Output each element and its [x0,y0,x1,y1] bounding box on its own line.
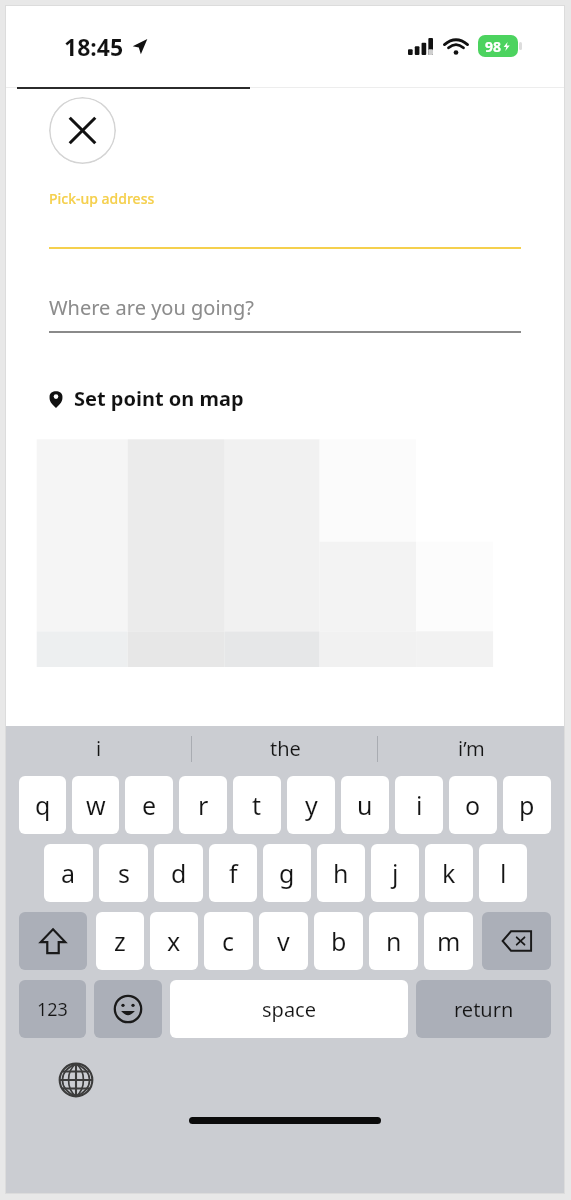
staticText: 18:45 [64,31,124,62]
staticText: h [333,856,349,890]
staticText: i’m [458,735,485,762]
staticText: m [437,924,461,958]
button[interactable]: i [6,726,192,771]
button[interactable]: f [209,844,257,902]
button[interactable]: z [96,912,144,970]
button[interactable]: r [179,776,227,834]
staticText: x [167,924,181,958]
button[interactable]: e [125,776,173,834]
button[interactable]: w [72,776,119,834]
staticText: t [252,788,262,822]
button[interactable]: t [233,776,281,834]
button[interactable]: d [154,844,203,902]
button[interactable]: Where are you going? [49,294,521,333]
staticText: 123 [37,997,68,1022]
button[interactable]: j [371,844,419,902]
button[interactable]: q [19,776,66,834]
button[interactable]: Set point on map [49,385,244,412]
staticText: k [442,856,456,890]
staticText: l [500,856,507,890]
button[interactable]: i [395,776,443,834]
staticText: c [222,924,235,958]
button[interactable]: m [424,912,473,970]
staticText: Where are you going? [49,294,254,321]
staticText: i [96,735,102,762]
staticText: w [86,788,106,822]
button[interactable]: Backspace [482,912,551,970]
staticText: y [305,788,318,822]
staticText: return [454,996,514,1023]
staticText: v [277,924,290,958]
staticText: o [465,788,481,822]
button[interactable]: h [317,844,365,902]
staticText: Pick-up address [49,189,155,208]
button[interactable]: p [503,776,551,834]
button[interactable]: k [425,844,473,902]
staticText: u [357,788,373,822]
button[interactable]: Shift [19,912,87,970]
staticText: 98 [485,37,502,56]
staticText: z [114,924,126,958]
staticText: r [198,788,209,822]
button[interactable]: Close [49,97,116,164]
button[interactable]: 123 [19,980,86,1038]
button[interactable]: Emoji [94,980,162,1038]
staticText: p [519,788,535,822]
button[interactable]: g [263,844,311,902]
button[interactable]: y [287,776,335,834]
staticText: i [416,788,423,822]
button[interactable]: Pick-up address [49,189,521,249]
staticText: Set point on map [74,385,244,412]
button[interactable]: space [170,980,408,1038]
staticText: b [331,924,347,958]
staticText: a [61,856,76,890]
button[interactable]: the [192,726,378,771]
staticText: d [171,856,187,890]
button[interactable]: b [314,912,363,970]
button[interactable]: s [99,844,148,902]
button[interactable]: l [479,844,527,902]
staticText: g [279,856,295,890]
staticText: e [142,788,157,822]
button[interactable]: return [416,980,551,1038]
staticText: s [118,856,130,890]
button[interactable]: c [204,912,253,970]
button[interactable]: a [44,844,93,902]
button[interactable]: n [369,912,418,970]
button[interactable]: u [341,776,389,834]
staticText: n [386,924,402,958]
button[interactable]: v [259,912,308,970]
button[interactable]: o [449,776,497,834]
staticText: the [270,735,301,762]
staticText: j [392,856,399,890]
staticText: q [35,788,51,822]
staticText: space [262,996,316,1023]
staticText: f [229,856,238,890]
button[interactable]: x [150,912,198,970]
button[interactable]: Change language [54,1058,98,1102]
button[interactable]: i’m [378,726,564,771]
